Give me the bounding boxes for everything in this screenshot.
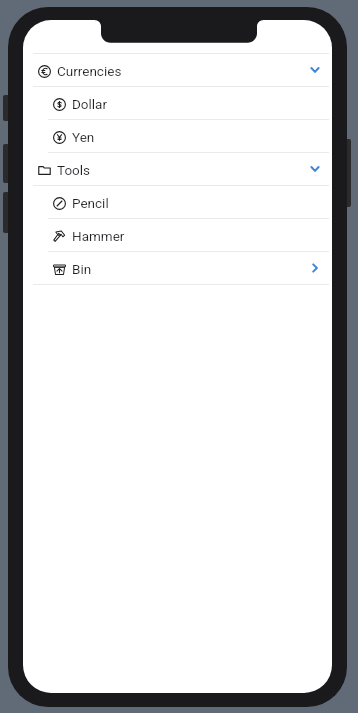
button[interactable]: Dollar [23,87,332,119]
staticText: Yen [72,129,95,145]
staticText: Currencies [57,63,122,79]
button[interactable]: Yen [23,120,332,152]
button[interactable]: Collapse section [307,161,323,177]
button[interactable]: Bin [23,252,332,284]
button[interactable]: Tools [23,153,332,185]
button[interactable]: Collapse section [307,62,323,78]
button[interactable]: Open [307,260,323,276]
staticText: Bin [72,261,92,277]
staticText: Hammer [72,228,125,244]
button[interactable]: Pencil [23,186,332,218]
button[interactable]: Hammer [23,219,332,251]
staticText: Dollar [72,96,108,112]
staticText: Pencil [72,195,109,211]
staticText: Tools [57,162,91,178]
button[interactable]: Currencies [23,54,332,86]
